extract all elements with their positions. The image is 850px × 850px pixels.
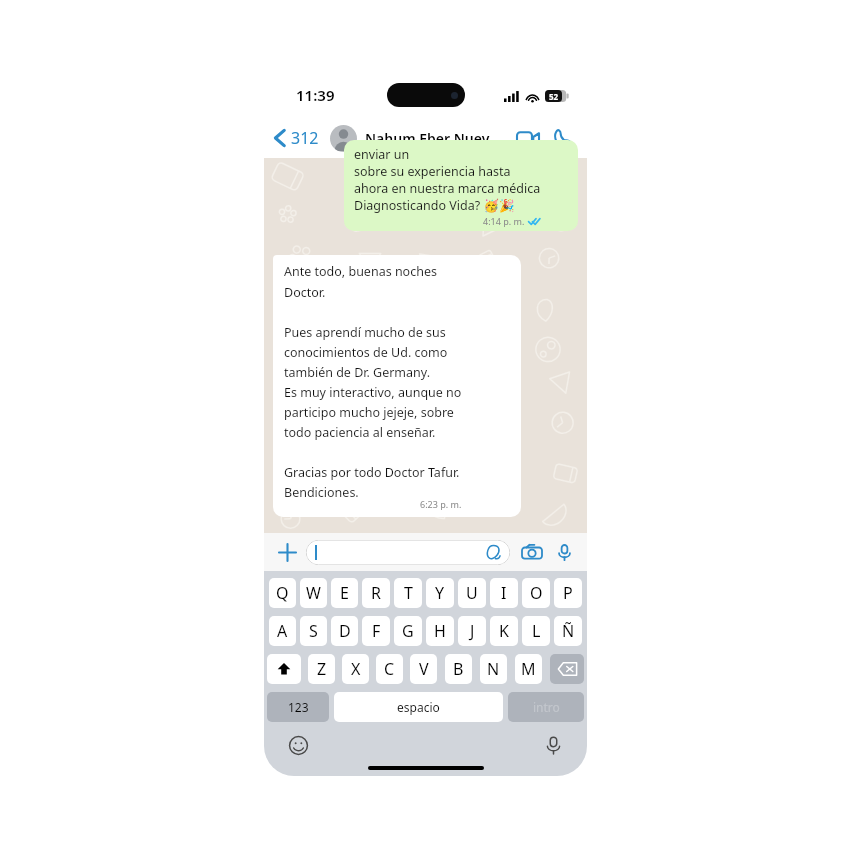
button[interactable]: Emoji bbox=[286, 733, 310, 757]
staticText: Y bbox=[435, 582, 445, 604]
button[interactable]: Shift bbox=[267, 654, 301, 684]
staticText: Ñ bbox=[562, 620, 575, 642]
button[interactable]: F bbox=[362, 616, 390, 646]
staticText: 6:23 p. m. bbox=[420, 498, 462, 510]
button[interactable]: N bbox=[480, 654, 507, 684]
button[interactable]: Z bbox=[308, 654, 335, 684]
staticText: 4:14 p. m. bbox=[483, 215, 525, 227]
button[interactable]: K bbox=[490, 616, 518, 646]
staticText: G bbox=[402, 620, 414, 642]
button[interactable]: Voice message bbox=[552, 540, 576, 564]
staticText: D bbox=[339, 620, 351, 642]
button[interactable]: enviar un sobre su experiencia hasta aho… bbox=[344, 140, 578, 231]
staticText: C bbox=[384, 658, 395, 680]
button[interactable]: T bbox=[394, 578, 422, 608]
staticText: Ante todo, buenas noches Doctor. Pues ap… bbox=[284, 263, 462, 500]
button[interactable]: L bbox=[522, 616, 550, 646]
button[interactable]: E bbox=[331, 578, 358, 608]
staticText: A bbox=[277, 620, 288, 642]
staticText: R bbox=[371, 582, 381, 604]
button[interactable]: 312 bbox=[272, 127, 321, 149]
staticText: I bbox=[501, 582, 507, 604]
button[interactable]: S bbox=[300, 616, 327, 646]
staticText: W bbox=[306, 582, 321, 604]
staticText: 52 bbox=[549, 91, 559, 102]
button[interactable]: Ante todo, buenas noches Doctor. Pues ap… bbox=[273, 255, 521, 517]
button[interactable]: Stickers bbox=[306, 540, 510, 565]
button[interactable]: G bbox=[394, 616, 422, 646]
staticText: V bbox=[419, 658, 429, 680]
button[interactable]: Q bbox=[269, 578, 296, 608]
button[interactable]: R bbox=[362, 578, 390, 608]
button[interactable]: Dictation bbox=[541, 733, 565, 757]
button[interactable]: Video call bbox=[511, 121, 545, 155]
staticText: P bbox=[563, 582, 573, 604]
other: Stickers bbox=[486, 545, 501, 560]
button[interactable]: O bbox=[522, 578, 550, 608]
button[interactable]: intro bbox=[508, 692, 584, 722]
button[interactable]: D bbox=[331, 616, 358, 646]
staticText: J bbox=[470, 620, 475, 642]
staticText: 312 bbox=[291, 127, 319, 149]
button[interactable]: M bbox=[515, 654, 542, 684]
staticText: M bbox=[521, 658, 536, 680]
staticText: E bbox=[340, 582, 349, 604]
staticText: 11:39 bbox=[296, 85, 335, 105]
staticText: Q bbox=[276, 582, 289, 604]
button[interactable]: U bbox=[458, 578, 486, 608]
button[interactable]: espacio bbox=[334, 692, 503, 722]
staticText: espacio bbox=[397, 699, 440, 715]
button[interactable]: P bbox=[554, 578, 582, 608]
staticText: N bbox=[487, 658, 500, 680]
staticText: Z bbox=[317, 658, 327, 680]
staticText: F bbox=[372, 620, 381, 642]
staticText: S bbox=[309, 620, 318, 642]
staticText: U bbox=[466, 582, 478, 604]
staticText: T bbox=[404, 582, 413, 604]
button[interactable]: X bbox=[342, 654, 369, 684]
button[interactable]: I bbox=[490, 578, 518, 608]
button[interactable]: Camera bbox=[520, 540, 544, 564]
button[interactable]: A bbox=[269, 616, 296, 646]
staticText: H bbox=[434, 620, 446, 642]
staticText: K bbox=[499, 620, 509, 642]
staticText: O bbox=[530, 582, 543, 604]
staticText: 123 bbox=[288, 699, 309, 715]
button[interactable]: W bbox=[300, 578, 327, 608]
staticText: L bbox=[532, 620, 541, 642]
staticText: intro bbox=[533, 699, 560, 715]
staticText: enviar un sobre su experiencia hasta aho… bbox=[354, 146, 541, 214]
button[interactable]: Attach bbox=[275, 540, 299, 564]
button[interactable]: H bbox=[426, 616, 454, 646]
button[interactable]: B bbox=[445, 654, 472, 684]
staticText: X bbox=[351, 658, 361, 680]
button[interactable]: Backspace bbox=[550, 654, 584, 684]
button[interactable]: V bbox=[410, 654, 437, 684]
button[interactable]: Nahum Eber Nuev... bbox=[365, 129, 511, 148]
button[interactable]: 123 bbox=[267, 692, 329, 722]
button[interactable]: Contact avatar bbox=[330, 125, 357, 152]
button[interactable]: J bbox=[458, 616, 486, 646]
button[interactable]: Ñ bbox=[554, 616, 582, 646]
button[interactable]: C bbox=[376, 654, 403, 684]
staticText: B bbox=[453, 658, 464, 680]
button[interactable]: Y bbox=[426, 578, 454, 608]
button[interactable]: Voice call bbox=[545, 121, 579, 155]
